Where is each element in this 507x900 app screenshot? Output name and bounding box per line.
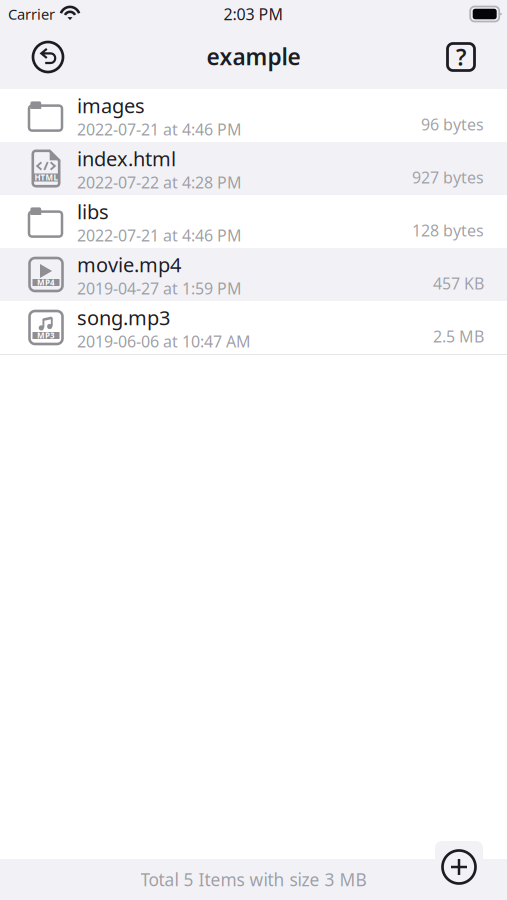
staticText: 927 bytes xyxy=(412,167,484,188)
button[interactable]: MP4 xyxy=(0,248,507,301)
button[interactable]: images xyxy=(0,89,507,142)
staticText: 2022-07-21 at 4:46 PM xyxy=(77,119,242,140)
staticText: 2.5 MB xyxy=(433,326,484,347)
staticText: index.html xyxy=(77,145,176,172)
staticText: example xyxy=(206,41,300,71)
staticText: MP3 xyxy=(37,330,55,341)
staticText: 2:03 PM xyxy=(223,3,283,25)
staticText: images xyxy=(77,92,145,119)
staticText: 96 bytes xyxy=(421,114,484,135)
button[interactable]: Add xyxy=(436,844,482,890)
staticText: 2019-04-27 at 1:59 PM xyxy=(77,278,242,299)
button[interactable]: Help xyxy=(438,34,484,80)
staticText: 2019-06-06 at 10:47 AM xyxy=(77,331,251,352)
staticText: MP4 xyxy=(37,277,55,288)
staticText: movie.mp4 xyxy=(77,251,181,278)
staticText: Carrier xyxy=(8,4,55,24)
button[interactable]: Back xyxy=(25,34,71,80)
button[interactable]: libs xyxy=(0,195,507,248)
staticText: ? xyxy=(456,42,466,72)
staticText: 2022-07-21 at 4:46 PM xyxy=(77,225,242,246)
staticText: song.mp3 xyxy=(77,304,170,331)
staticText: 128 bytes xyxy=(412,220,484,241)
staticText: 457 KB xyxy=(433,273,484,294)
button[interactable]: MP3 xyxy=(0,301,507,354)
button[interactable]: HTML xyxy=(0,142,507,195)
staticText: libs xyxy=(77,198,109,225)
staticText: Total 5 Items with size 3 MB xyxy=(140,868,366,891)
staticText: 2022-07-22 at 4:28 PM xyxy=(77,172,242,193)
staticText: HTML xyxy=(34,172,57,183)
